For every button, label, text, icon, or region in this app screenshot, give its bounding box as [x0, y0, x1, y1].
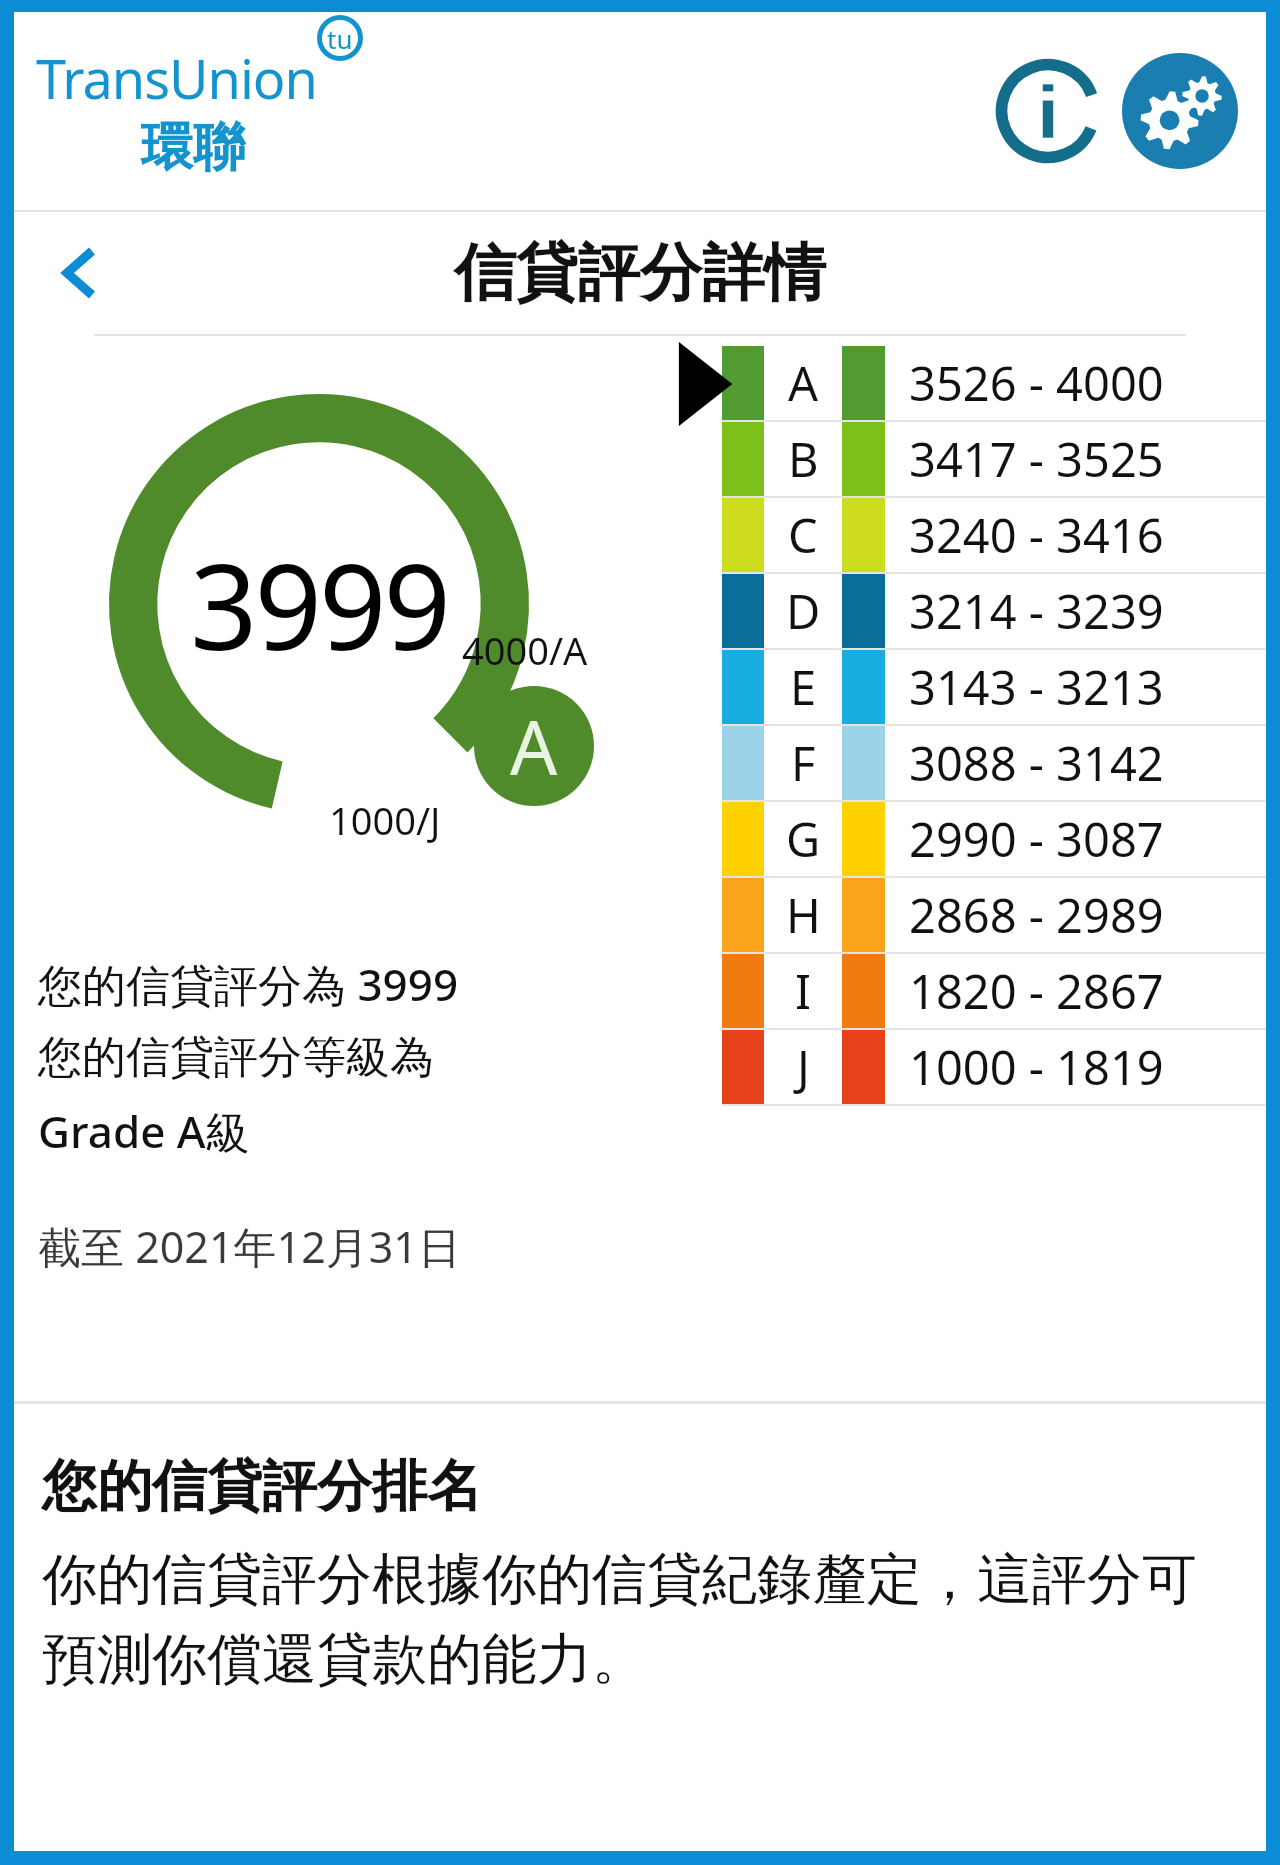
staticText: 您的信貸評分等級為	[38, 1030, 434, 1085]
button[interactable]: A	[674, 346, 1266, 420]
staticText: 1000 - 1819	[909, 1035, 1164, 1099]
staticText: 2990 - 3087	[909, 807, 1164, 871]
button[interactable]: Back	[40, 233, 120, 313]
staticText: Grade A級	[38, 1101, 250, 1161]
staticText: TransUnion	[36, 41, 317, 115]
staticText: I	[795, 959, 811, 1023]
staticText: 信貸評分詳情	[454, 234, 826, 312]
button[interactable]: J	[674, 1030, 1266, 1104]
staticText: 3143 - 3213	[909, 655, 1164, 719]
staticText: 3214 - 3239	[909, 579, 1164, 643]
staticText: B	[788, 427, 819, 491]
staticText: 你的信貸評分根據你的信貸紀錄釐定，這評分可預測你償還貸款的能力。	[42, 1545, 1238, 1694]
staticText: 3417 - 3525	[909, 427, 1164, 491]
staticText: 3088 - 3142	[909, 731, 1164, 795]
button[interactable]: Information	[990, 53, 1106, 169]
button[interactable]: Settings	[1122, 53, 1238, 169]
button[interactable]: E	[674, 650, 1266, 724]
staticText: 3240 - 3416	[909, 503, 1164, 567]
staticText: G	[786, 807, 821, 871]
staticText: D	[786, 579, 821, 643]
staticText: 您的信貸評分排名	[42, 1452, 482, 1521]
button[interactable]: I	[674, 954, 1266, 1028]
staticText: A	[788, 351, 819, 415]
staticText: A	[510, 696, 558, 797]
staticText: 截至 2021年12月31日	[38, 1217, 461, 1276]
staticText: 4000/A	[462, 624, 588, 676]
staticText: H	[786, 883, 821, 947]
staticText: 1820 - 2867	[909, 959, 1164, 1023]
button[interactable]: G	[674, 802, 1266, 876]
button[interactable]: B	[674, 422, 1266, 496]
button[interactable]: F	[674, 726, 1266, 800]
staticText: F	[791, 731, 816, 795]
staticText: 1000/J	[329, 794, 441, 846]
staticText: 3999	[190, 524, 448, 685]
staticText: 2868 - 2989	[909, 883, 1164, 947]
button[interactable]: D	[674, 574, 1266, 648]
staticText: J	[797, 1035, 810, 1099]
staticText: E	[790, 655, 817, 719]
staticText: tu	[327, 21, 353, 56]
staticText: 3526 - 4000	[909, 351, 1164, 415]
staticText: C	[788, 503, 818, 567]
staticText: 環聯	[141, 115, 245, 181]
button[interactable]: C	[674, 498, 1266, 572]
staticText: 您的信貸評分為 3999	[38, 954, 459, 1014]
button[interactable]: H	[674, 878, 1266, 952]
